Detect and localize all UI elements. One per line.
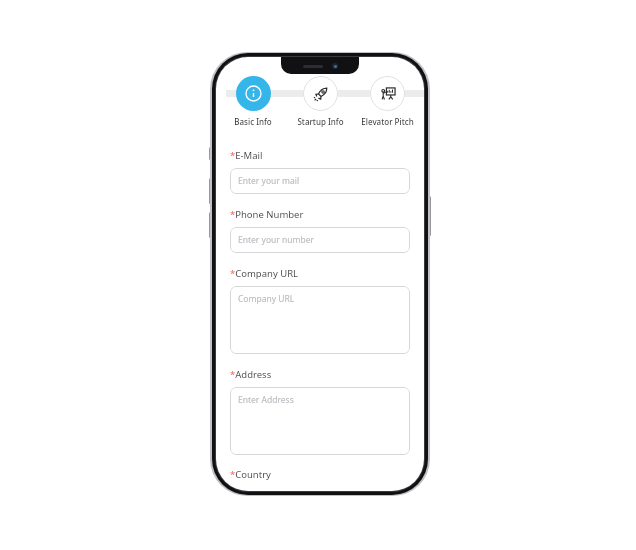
button[interactable]: Elevator Pitch (356, 76, 418, 127)
staticText: *E-Mail (230, 149, 263, 162)
staticText: Elevator Pitch (361, 116, 414, 127)
button[interactable]: Enter your number (230, 227, 410, 253)
staticText: Enter Address (238, 394, 294, 406)
staticText: *Address (230, 368, 272, 381)
button[interactable]: Company URL (230, 286, 410, 354)
staticText: *Country (230, 468, 271, 481)
button[interactable]: Enter Address (230, 387, 410, 455)
staticText: Company URL (238, 293, 295, 305)
staticText: Basic Info (234, 116, 272, 127)
staticText: Startup Info (297, 116, 344, 127)
button[interactable]: Enter your mail (230, 168, 410, 194)
staticText: Enter your mail (238, 175, 300, 187)
staticText: *Company URL (230, 267, 299, 280)
button[interactable]: Basic Info (222, 76, 284, 127)
staticText: Enter your number (238, 234, 314, 246)
staticText: *Phone Number (230, 208, 304, 221)
button[interactable]: Startup Info (289, 76, 351, 127)
